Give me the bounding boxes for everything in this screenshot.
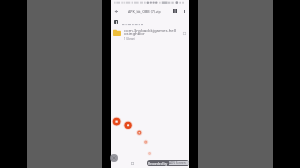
staticText: ADV Screen Rec [169, 161, 189, 165]
button[interactable]: More options [180, 6, 189, 16]
button[interactable]: Internal storage [114, 20, 118, 24]
staticText: APK_bk_OBB (7).zip [128, 9, 161, 14]
staticText: 1 Ubrani [124, 37, 135, 41]
button[interactable]: Home [131, 162, 134, 165]
button[interactable]: Back [112, 6, 121, 16]
button[interactable]: Select item [183, 32, 186, 35]
button[interactable]: Screen recorder [110, 154, 118, 162]
staticText: com.3nybackkjgames.hellosinghbor [124, 27, 178, 36]
button[interactable]: com.3nybackkjgames.hellosinghbor [111, 27, 189, 41]
button[interactable]: Grid view [170, 6, 180, 16]
staticText: Recorded by [148, 161, 168, 165]
